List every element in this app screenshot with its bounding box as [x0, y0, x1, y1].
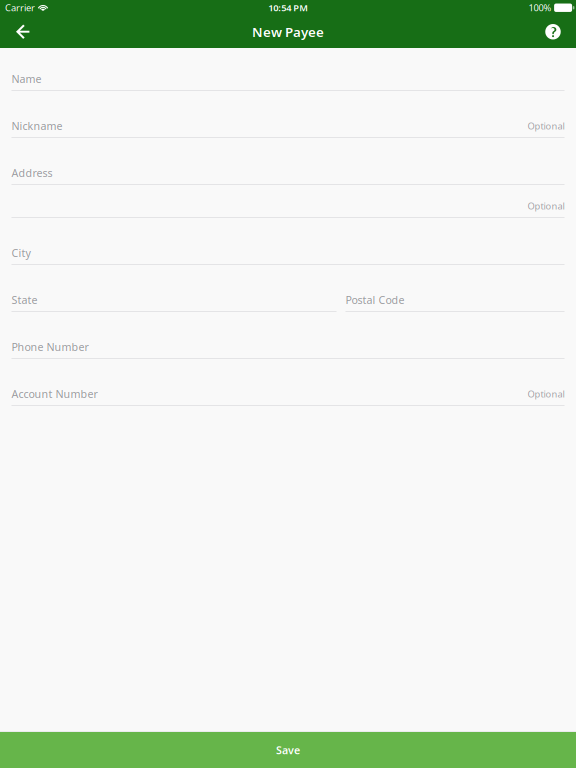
button[interactable]: Account Number	[11, 359, 564, 406]
button[interactable]: Name	[11, 48, 564, 91]
button[interactable]: Postal Code	[345, 265, 564, 312]
button[interactable]: Phone Number	[11, 312, 564, 359]
staticText: City	[11, 246, 30, 260]
button[interactable]: Address line 2	[11, 185, 564, 218]
button[interactable]: City	[11, 218, 564, 265]
button[interactable]: Back	[6, 16, 40, 47]
staticText: Postal Code	[345, 293, 404, 307]
staticText: Save	[276, 743, 300, 757]
button[interactable]: Nickname	[11, 91, 564, 138]
staticText: Carrier	[5, 2, 35, 14]
staticText: New Payee	[252, 23, 324, 41]
staticText: State	[11, 293, 37, 307]
staticText: Account Number	[11, 387, 97, 401]
staticText: Optional	[527, 200, 564, 212]
button[interactable]: State	[11, 265, 336, 312]
staticText: Nickname	[11, 119, 62, 133]
button[interactable]: Address	[11, 138, 564, 185]
staticText: Name	[11, 72, 41, 86]
button[interactable]: Help	[536, 16, 570, 47]
staticText: Optional	[527, 388, 564, 400]
staticText: Optional	[527, 120, 564, 132]
button[interactable]: Save	[0, 732, 576, 768]
staticText: 10:54 PM	[268, 2, 308, 14]
staticText: Address	[11, 166, 52, 180]
staticText: Phone Number	[11, 340, 88, 354]
staticText: 100%	[528, 2, 551, 14]
